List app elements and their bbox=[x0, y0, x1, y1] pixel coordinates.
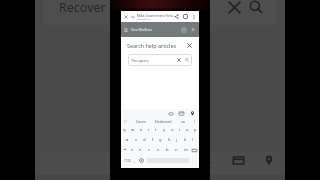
staticText: Search help articles bbox=[127, 42, 177, 49]
staticText: g bbox=[159, 137, 162, 143]
staticText: y bbox=[163, 127, 166, 133]
staticText: t bbox=[155, 127, 157, 133]
staticText: d bbox=[143, 137, 146, 143]
staticText: o bbox=[186, 127, 189, 133]
button[interactable]: Places bbox=[257, 148, 281, 172]
staticText: j bbox=[176, 137, 178, 143]
staticText: mika.gov.in bbox=[137, 17, 150, 20]
button[interactable]: Wallet bbox=[226, 148, 250, 172]
staticText: c bbox=[148, 147, 151, 153]
staticText: Recover bbox=[59, 0, 106, 16]
staticText: a bbox=[126, 137, 129, 143]
staticText: x bbox=[139, 147, 142, 153]
staticText: u bbox=[171, 127, 174, 133]
button[interactable]: Search bbox=[245, 0, 267, 22]
staticText: v bbox=[157, 147, 160, 153]
staticText: , bbox=[134, 158, 136, 163]
staticText: h bbox=[168, 137, 171, 143]
button[interactable]: Close bbox=[223, 0, 245, 22]
staticText: r bbox=[148, 127, 150, 133]
button[interactable]: Close search bbox=[185, 41, 193, 49]
staticText: e bbox=[140, 127, 143, 133]
staticText: z bbox=[131, 147, 133, 153]
staticText: b bbox=[166, 147, 169, 153]
staticText: by bbox=[131, 15, 135, 19]
staticText: Cases bbox=[136, 119, 146, 124]
staticText: Mika Government Help Cen… bbox=[137, 13, 173, 17]
staticText: f bbox=[152, 137, 154, 143]
button[interactable]: History bbox=[195, 148, 219, 172]
staticText: This query bbox=[131, 58, 149, 63]
staticText: s bbox=[135, 137, 138, 143]
staticText: . bbox=[192, 158, 194, 163]
staticText: w bbox=[131, 127, 135, 133]
staticText: so bbox=[181, 119, 185, 124]
staticText: n bbox=[175, 147, 178, 153]
staticText: Gov Mailbox bbox=[131, 27, 152, 32]
staticText: i bbox=[179, 127, 181, 133]
staticText: p bbox=[194, 127, 197, 133]
staticText: k bbox=[184, 137, 187, 143]
staticText: q bbox=[123, 127, 126, 133]
staticText: m bbox=[184, 147, 188, 153]
staticText: l bbox=[192, 137, 194, 143]
staticText: Darkened bbox=[155, 119, 172, 124]
staticText: ?123 bbox=[124, 159, 131, 163]
